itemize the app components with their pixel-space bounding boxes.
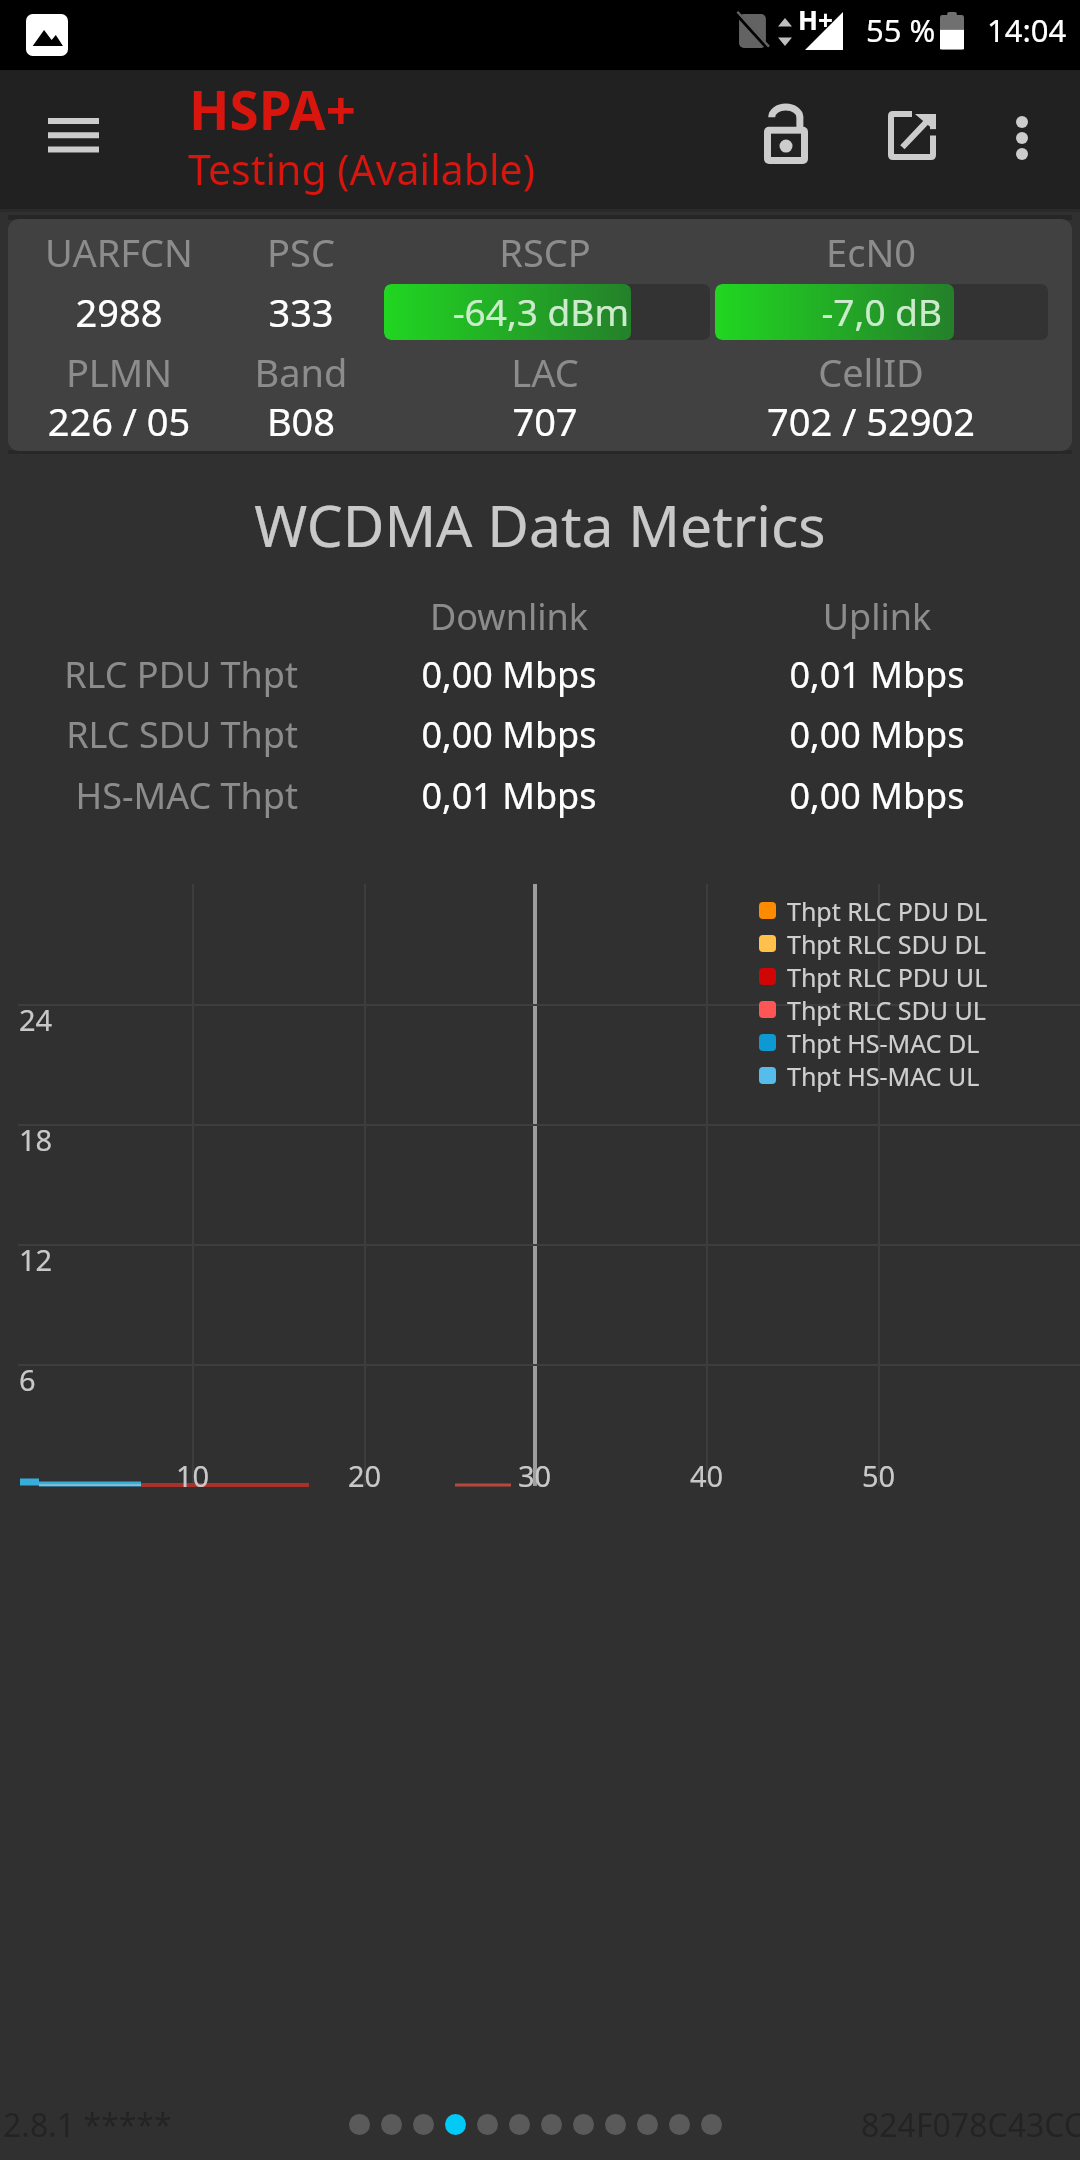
staticText: 2988 (8, 286, 234, 338)
staticText: Thpt RLC PDU UL (787, 960, 988, 993)
staticText: CellID (702, 346, 1040, 398)
staticText: 20 (348, 1456, 382, 1495)
staticText: Band (193, 346, 409, 398)
staticText: 0,01 Mbps (354, 771, 664, 820)
staticText: Thpt HS-MAC UL (787, 1059, 980, 1092)
staticText: 14:04 (987, 9, 1067, 51)
staticText: 6 (19, 1360, 36, 1399)
staticText: Downlink (354, 592, 664, 641)
staticText: EcN0 (702, 226, 1040, 278)
staticText: Testing (Available) (188, 141, 535, 197)
staticText: 12 (19, 1240, 53, 1279)
staticText: B08 (193, 395, 409, 447)
staticText: PSC (193, 226, 409, 278)
staticText: 333 (193, 286, 409, 338)
staticText: LAC (382, 346, 708, 398)
staticText: Thpt RLC SDU DL (787, 927, 986, 960)
staticText: 702 / 52902 (702, 395, 1040, 447)
button[interactable] (413, 2114, 434, 2135)
button[interactable] (381, 2114, 402, 2135)
button[interactable] (605, 2114, 626, 2135)
staticText: 18 (19, 1120, 53, 1159)
button[interactable] (637, 2114, 658, 2135)
staticText: -7,0 dB (715, 286, 942, 336)
staticText: 226 / 05 (8, 395, 234, 447)
button[interactable] (349, 2114, 370, 2135)
staticText: 707 (382, 395, 708, 447)
staticText: 0,01 Mbps (722, 650, 1032, 699)
button[interactable] (477, 2114, 498, 2135)
staticText: 30 (518, 1456, 552, 1495)
staticText: H+ (798, 2, 833, 37)
staticText: Uplink (722, 592, 1032, 641)
staticText: 2.8.1 ***** (3, 2103, 172, 2147)
staticText: WCDMA Data Metrics (0, 486, 1080, 564)
staticText: HSPA+ (189, 73, 357, 145)
staticText: 50 (862, 1456, 896, 1495)
staticText: PLMN (8, 346, 234, 398)
staticText: -64,3 dBm (384, 286, 629, 336)
staticText: 40 (690, 1456, 724, 1495)
button[interactable]: More options (974, 90, 1070, 186)
staticText: 0,00 Mbps (354, 650, 664, 699)
button[interactable] (669, 2114, 690, 2135)
staticText: 0,00 Mbps (722, 771, 1032, 820)
button[interactable] (541, 2114, 562, 2135)
staticText: UARFCN (8, 226, 234, 278)
button[interactable]: Navigation menu (17, 87, 129, 193)
button[interactable] (509, 2114, 530, 2135)
button[interactable] (701, 2114, 722, 2135)
staticText: Thpt RLC PDU DL (787, 894, 988, 927)
staticText: 10 (176, 1456, 210, 1495)
staticText: 0,00 Mbps (354, 710, 664, 759)
staticText: 55 % (866, 9, 936, 51)
button[interactable]: Unlock screen (730, 87, 842, 183)
staticText: Thpt RLC SDU UL (787, 993, 986, 1026)
staticText: 0,00 Mbps (722, 710, 1032, 759)
staticText: 24 (19, 1000, 53, 1039)
staticText: RSCP (382, 226, 708, 278)
staticText: 824F078C43CC (861, 2103, 1080, 2147)
staticText: HS-MAC Thpt (0, 771, 298, 820)
staticText: RLC PDU Thpt (0, 650, 298, 699)
button[interactable] (445, 2114, 466, 2135)
staticText: RLC SDU Thpt (0, 710, 298, 759)
button[interactable] (573, 2114, 594, 2135)
button[interactable]: Open in new window (856, 87, 968, 183)
staticText: Thpt HS-MAC DL (787, 1026, 980, 1059)
